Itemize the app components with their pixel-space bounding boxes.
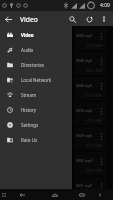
staticText: 00:02 14MB [86,94,102,98]
button[interactable]: Audio [0,42,72,57]
staticText: 00:00 12MB [86,44,102,48]
staticText: 4740 mp4 [76,58,92,63]
staticText: 4848 mp4 [76,83,92,88]
button[interactable]: Menu [92,189,108,200]
staticText: Stream [21,92,37,98]
staticText: 00:04 16MB [86,144,102,148]
button[interactable]: Settings [0,117,72,132]
button[interactable]: Back [14,189,30,200]
staticText: 4822 mp4 [76,158,92,163]
staticText: 5014 mp4 [76,108,92,113]
staticText: 00:01 13MB [86,69,102,73]
button[interactable]: Directories [0,57,72,72]
button[interactable]: Local Network [0,72,72,87]
button[interactable]: Refresh [83,13,95,25]
button[interactable]: Recent apps [0,189,12,200]
button[interactable]: Search [66,13,78,25]
staticText: 4354 mp4 [76,33,92,38]
staticText: Video [20,15,38,24]
button[interactable]: Home [47,189,63,200]
button[interactable]: Video [0,27,72,42]
staticText: 00:03 15MB [86,119,102,123]
staticText: 4:09 [100,2,110,9]
staticText: Directories [21,62,44,68]
button[interactable]: Screenshot [74,189,90,200]
staticText: Rate Us [21,137,38,143]
staticText: Settings [21,122,39,128]
button[interactable]: History [0,102,72,117]
button[interactable]: More options [98,13,110,25]
staticText: History [21,107,37,113]
button[interactable]: Rate Us [0,132,72,147]
staticText: 00:06 18MB [86,193,102,197]
staticText: Audio [21,47,34,53]
staticText: 4611 mp4 [76,183,92,188]
button[interactable]: Back [2,13,14,25]
staticText: Video [21,32,34,38]
staticText: 4149 mp4 [76,133,92,138]
button[interactable]: Stream [0,87,72,102]
staticText: 00:05 17MB [86,169,102,173]
staticText: Local Network [21,77,52,83]
